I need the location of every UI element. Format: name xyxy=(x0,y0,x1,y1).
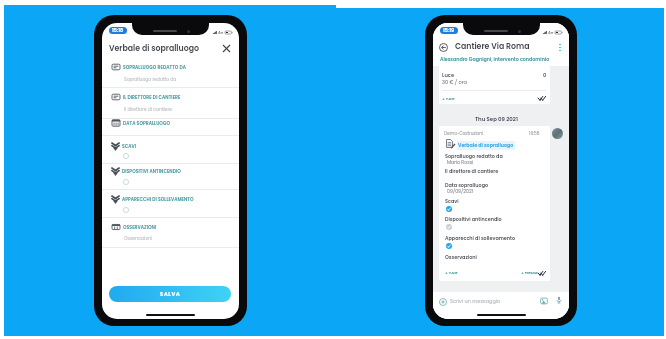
staticText: Thu Sep 09 2021 xyxy=(475,115,518,123)
staticText: Il direttore di cantiere xyxy=(124,106,172,112)
staticText: Mario Rossi xyxy=(447,159,474,166)
staticText: 4G xyxy=(548,30,554,35)
staticText: SALVA xyxy=(160,291,181,298)
staticText: Luce xyxy=(442,72,455,79)
button[interactable]: Attach image xyxy=(540,297,548,305)
staticText: 09/09/2021 xyxy=(447,188,474,195)
staticText: 16:58 xyxy=(529,130,540,136)
button[interactable]: DATA SOPRALLUOGO xyxy=(102,117,239,136)
button[interactable]: Close xyxy=(220,42,233,55)
staticText: OSSERVAZIONI xyxy=(123,224,157,230)
staticText: Osservazioni xyxy=(445,254,477,261)
staticText: SCAVI xyxy=(122,143,137,149)
button[interactable]: Voice message xyxy=(555,296,563,304)
staticText: + TAG xyxy=(445,270,458,276)
button[interactable]: Add xyxy=(439,298,447,306)
staticText: 15:19 xyxy=(443,27,455,34)
staticText: Osservazioni xyxy=(124,235,153,241)
staticText: Data sopralluogo xyxy=(445,182,489,189)
staticText: 0 xyxy=(543,72,547,79)
staticText: 15:18 xyxy=(112,27,124,34)
staticText: Demo-Costruzioni xyxy=(444,130,484,136)
staticText: + FIRMA xyxy=(521,270,538,276)
staticText: Verbale di sopralluogo xyxy=(458,142,514,149)
button[interactable]: Verbale di sopralluogo xyxy=(109,40,233,57)
staticText: 4G xyxy=(218,30,224,35)
staticText: Scavi xyxy=(445,198,459,205)
staticText: DISPOSITIVI ANTINCENDIO xyxy=(122,168,181,174)
staticText: IL DIRETTORE DI CANTIERE xyxy=(123,94,181,100)
button[interactable]: DISPOSITIVI ANTINCENDIO xyxy=(102,165,239,190)
staticText: DATA SOPRALLUOGO xyxy=(123,120,171,126)
button[interactable]: SALVA xyxy=(109,286,231,302)
button[interactable]: OSSERVAZIONI xyxy=(102,221,239,248)
staticText: Verbale di sopralluogo xyxy=(109,43,199,54)
staticText: Il direttore di cantiere xyxy=(445,168,499,175)
staticText: + TAG xyxy=(442,96,455,102)
staticText: Sopralluogo redatto da xyxy=(445,153,503,160)
button[interactable]: APPARECCHI DI SOLLEVAMENTO xyxy=(102,193,239,218)
button[interactable]: Back xyxy=(437,41,449,53)
staticText: Cantiere Via Roma xyxy=(455,41,530,52)
staticText: 30 € / ora xyxy=(442,79,467,86)
staticText: Scrivi un messaggio xyxy=(450,298,501,305)
staticText: Sopralluogo redatto da xyxy=(124,76,177,82)
staticText: Dispositivi antincendio xyxy=(445,216,502,223)
button[interactable]: SOPRALLUOGO REDATTO DA xyxy=(102,61,239,88)
staticText: SOPRALLUOGO REDATTO DA xyxy=(123,64,187,70)
staticText: APPARECCHI DI SOLLEVAMENTO xyxy=(122,196,194,202)
staticText: Apparecchi di sollevamento xyxy=(445,235,516,242)
button[interactable]: IL DIRETTORE DI CANTIERE xyxy=(102,91,239,119)
button[interactable]: SCAVI xyxy=(102,140,239,164)
staticText: Alessandro Gagnigni, intervento condomin… xyxy=(440,56,550,63)
button[interactable]: More options xyxy=(555,42,565,52)
